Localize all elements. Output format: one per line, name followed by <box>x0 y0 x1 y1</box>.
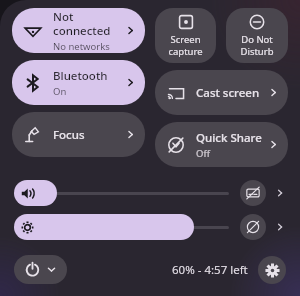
button[interactable]: Cast screen <box>155 70 288 115</box>
button[interactable]: Live caption slider <box>14 180 229 206</box>
button[interactable]: Auto brightness slider <box>14 214 229 240</box>
button[interactable]: Bluetooth <box>12 60 145 105</box>
button[interactable]: Live caption settings <box>272 185 288 201</box>
button[interactable]: Power options <box>14 255 67 284</box>
staticText: No networks <box>53 40 110 53</box>
staticText: Off <box>196 147 210 160</box>
button[interactable]: Do Not Disturb <box>226 8 288 63</box>
staticText: Do Not Disturb <box>240 33 274 57</box>
button[interactable]: Auto brightness settings <box>272 219 288 235</box>
button[interactable]: Screen capture <box>155 8 216 63</box>
button[interactable]: Not connected <box>12 8 145 53</box>
button[interactable]: Live caption <box>240 180 266 206</box>
button[interactable]: Auto brightness <box>240 214 266 240</box>
staticText: Not connected <box>53 9 125 39</box>
button[interactable]: Quick Share <box>155 122 288 167</box>
staticText: Cast screen <box>196 85 260 101</box>
staticText: Screen capture <box>168 33 203 57</box>
staticText: On <box>53 85 67 98</box>
staticText: Bluetooth <box>53 68 108 84</box>
button[interactable]: Settings <box>258 256 286 284</box>
staticText: 60% - 4:57 left <box>172 262 248 278</box>
button[interactable]: Focus <box>12 112 145 157</box>
staticText: Quick Share <box>196 130 262 146</box>
staticText: Focus <box>53 127 85 143</box>
